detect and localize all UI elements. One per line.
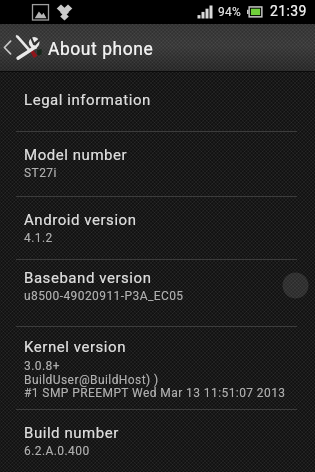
staticText: Legal information <box>24 91 151 109</box>
button[interactable]: Baseband version <box>0 259 315 326</box>
staticText: Build number <box>24 424 119 442</box>
staticText: BuildUser@BuildHost) ) <box>24 373 159 387</box>
staticText: ST27i <box>24 166 57 180</box>
staticText: Model number <box>24 146 128 164</box>
staticText: Baseband version <box>24 269 152 287</box>
staticText: 3.0.8+ <box>24 359 60 373</box>
staticText: 6.2.A.0.400 <box>24 444 90 458</box>
button[interactable]: Android version <box>0 196 315 259</box>
staticText: Android version <box>24 211 137 229</box>
staticText: #1 SMP PREEMPT Wed Mar 13 11:51:07 2013 <box>24 386 286 400</box>
staticText: u8500-49020911-P3A_EC05 <box>24 289 184 303</box>
button[interactable]: Navigate up <box>0 24 315 72</box>
button[interactable]: Model number <box>0 131 315 196</box>
staticText: 21:39 <box>270 3 307 19</box>
button[interactable]: Legal information <box>0 72 315 131</box>
button[interactable]: Build number <box>0 409 315 472</box>
staticText: 94% <box>218 5 242 19</box>
staticText: About phone <box>48 39 154 60</box>
button[interactable]: Kernel version <box>0 326 315 409</box>
staticText: Kernel version <box>24 338 126 356</box>
staticText: 4.1.2 <box>24 231 53 245</box>
